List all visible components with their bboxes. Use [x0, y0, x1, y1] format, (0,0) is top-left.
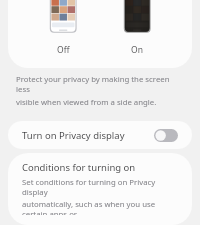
- button[interactable]: Turn on Privacy display: [154, 129, 178, 142]
- staticText: On: [131, 44, 143, 56]
- staticText: Set conditions for turning on Privacy di…: [22, 177, 178, 197]
- staticText: Protect your privacy by making the scree…: [16, 74, 184, 94]
- staticText: automatically, such as when you use cert…: [22, 199, 178, 215]
- button[interactable]: Turn on Privacy display: [8, 121, 192, 149]
- staticText: Off: [57, 44, 70, 56]
- staticText: Turn on Privacy display: [22, 129, 154, 142]
- button[interactable]: Conditions for turning on: [8, 153, 192, 225]
- staticText: Conditions for turning on: [22, 161, 136, 174]
- staticText: visible when viewed from a side angle.: [16, 97, 157, 108]
